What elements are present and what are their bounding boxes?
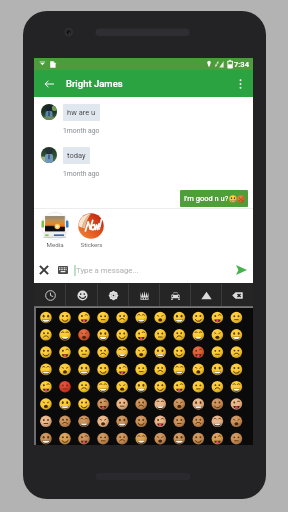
button[interactable]: Smileys (66, 283, 98, 307)
button[interactable]: Nature (98, 283, 129, 307)
button[interactable]: Send (230, 257, 253, 283)
button[interactable]: I'm good n u? (180, 190, 248, 207)
button[interactable]: Close (34, 257, 53, 283)
staticText: I'm good n u? (184, 194, 229, 203)
staticText: Type a message... (76, 266, 230, 275)
staticText: 1month ago (63, 127, 100, 135)
staticText: 1month ago (63, 170, 100, 178)
staticText: today (67, 151, 86, 160)
button[interactable]: Backspace (222, 283, 253, 307)
button[interactable]: Food (129, 283, 160, 307)
button[interactable]: today (63, 147, 90, 164)
button[interactable]: Travel (160, 283, 191, 307)
staticText: Media (46, 241, 64, 248)
button[interactable]: Keyboard (53, 257, 73, 283)
button[interactable]: Media (40, 212, 70, 248)
button[interactable]: More options (229, 73, 251, 95)
button[interactable]: hw are u (63, 104, 100, 121)
button[interactable]: Recent (34, 283, 66, 307)
staticText: hw are u (67, 108, 96, 117)
staticText: Bright James (66, 78, 123, 89)
staticText: Stickers (80, 241, 103, 248)
button[interactable]: Stickers (76, 212, 106, 248)
button[interactable]: Back (38, 73, 60, 95)
staticText: 7:34 (234, 60, 249, 69)
button[interactable]: Symbols (191, 283, 222, 307)
